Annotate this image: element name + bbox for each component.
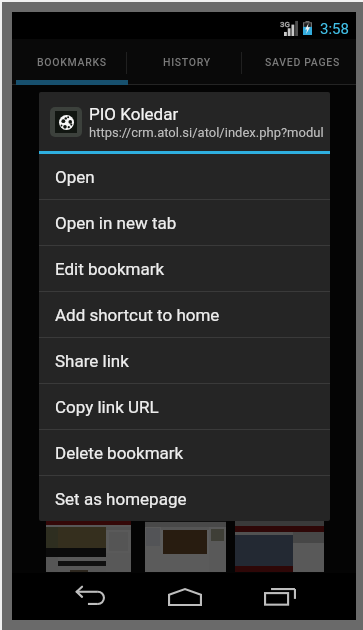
staticText: Copy link URL bbox=[55, 397, 159, 417]
staticText: Set as homepage bbox=[55, 489, 187, 509]
button[interactable]: HISTORY bbox=[127, 39, 241, 80]
staticText: HISTORY bbox=[163, 56, 211, 68]
button[interactable]: BOOKMARKS bbox=[12, 39, 126, 80]
button[interactable]: Open in new tab bbox=[39, 200, 330, 245]
staticText: Delete bookmark bbox=[55, 443, 184, 463]
button[interactable]: Add shortcut to home bbox=[39, 292, 330, 337]
staticText: Open in new tab bbox=[55, 213, 177, 233]
staticText: Open bbox=[55, 167, 95, 187]
button[interactable]: Back bbox=[50, 573, 129, 620]
button[interactable]: Edit bookmark bbox=[39, 246, 330, 291]
staticText: SAVED PAGES bbox=[265, 56, 340, 68]
staticText: BOOKMARKS bbox=[37, 56, 107, 68]
button[interactable]: Copy link URL bbox=[39, 384, 330, 429]
staticText: https://crm.atol.si/atol/index.php?modul bbox=[89, 125, 324, 140]
staticText: Share link bbox=[55, 351, 129, 371]
staticText: PIO Koledar bbox=[89, 104, 179, 124]
button[interactable]: Set as homepage bbox=[39, 476, 330, 521]
button[interactable]: Home bbox=[145, 573, 224, 620]
button[interactable]: Recent apps bbox=[240, 573, 319, 620]
staticText: Edit bookmark bbox=[55, 259, 165, 279]
staticText: Add shortcut to home bbox=[55, 305, 220, 325]
button[interactable]: Share link bbox=[39, 338, 330, 383]
button[interactable]: Open bbox=[39, 154, 330, 199]
button[interactable]: SAVED PAGES bbox=[242, 39, 356, 80]
staticText: 3G bbox=[280, 20, 290, 29]
staticText: 3:58 bbox=[320, 20, 349, 38]
button[interactable]: Delete bookmark bbox=[39, 430, 330, 475]
